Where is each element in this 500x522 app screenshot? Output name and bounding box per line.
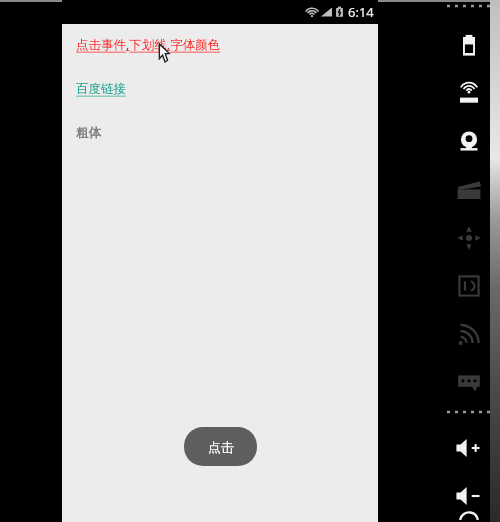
button[interactable]: 百度链接 [76,81,126,97]
button[interactable]: Rotate [438,520,500,522]
button[interactable]: Cellular [438,310,500,358]
button[interactable]: Phone ID [438,262,500,310]
button[interactable]: Battery [438,22,500,70]
staticText: 粗体 [76,125,101,141]
staticText: 百度链接 [76,81,126,97]
button[interactable]: 点击事件,下划线,字体颜色 [76,36,221,53]
button[interactable]: Volume up [438,424,500,472]
button[interactable]: Messages [438,358,500,406]
button[interactable]: D-pad [438,214,500,262]
button[interactable]: 点击 [184,427,257,466]
button[interactable]: GPS [438,70,500,118]
button[interactable]: Camera [438,118,500,166]
button[interactable]: Volume down [438,472,500,520]
button[interactable]: Record [438,166,500,214]
staticText: 6:14 [348,3,374,21]
staticText: 点击事件,下划线,字体颜色 [76,36,221,53]
staticText: 点击 [208,439,234,455]
